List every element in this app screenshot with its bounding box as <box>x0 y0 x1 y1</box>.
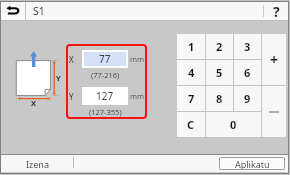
staticText: 6 <box>244 65 251 80</box>
staticText: Izena <box>26 158 49 170</box>
staticText: 0 <box>230 117 237 132</box>
button[interactable]: 5 <box>206 60 233 85</box>
button[interactable]: 9 <box>234 86 261 111</box>
button[interactable]: Aplikatu <box>220 158 284 169</box>
staticText: mm <box>130 91 145 101</box>
button[interactable]: 7 <box>177 86 205 111</box>
button[interactable]: 3 <box>234 34 261 59</box>
staticText: 7 <box>188 91 195 106</box>
button[interactable]: Back <box>1 2 25 20</box>
staticText: X <box>69 54 74 65</box>
staticText: (77-216) <box>91 70 120 80</box>
staticText: mm <box>130 54 145 64</box>
button[interactable]: 127 <box>84 89 126 103</box>
button[interactable]: 8 <box>206 86 233 111</box>
staticText: ? <box>273 2 280 20</box>
button[interactable]: 4 <box>177 60 205 85</box>
button[interactable]: 77 <box>84 52 126 66</box>
staticText: 4 <box>188 65 195 80</box>
button[interactable]: Help <box>264 2 288 20</box>
button[interactable]: Increase <box>262 34 286 85</box>
staticText: 8 <box>216 91 223 106</box>
button[interactable]: 2 <box>206 34 233 59</box>
staticText: 2 <box>216 39 223 54</box>
button[interactable]: 6 <box>234 60 261 85</box>
staticText: Y <box>56 73 61 83</box>
staticText: (127-355) <box>89 107 122 117</box>
button[interactable]: C <box>177 112 205 137</box>
staticText: 3 <box>244 39 251 54</box>
staticText: C <box>187 117 195 132</box>
button[interactable]: Decrease <box>262 86 286 137</box>
staticText: + <box>270 50 279 69</box>
staticText: 1 <box>188 39 195 54</box>
staticText: 77 <box>99 52 111 66</box>
button[interactable]: 1 <box>177 34 205 59</box>
staticText: 9 <box>244 91 251 106</box>
staticText: Y <box>69 91 74 102</box>
staticText: X <box>31 98 37 108</box>
button[interactable]: Izena <box>2 155 73 172</box>
staticText: Aplikatu <box>235 158 270 169</box>
staticText: 127 <box>96 89 114 103</box>
staticText: 5 <box>216 65 223 80</box>
button[interactable]: 0 <box>206 112 261 137</box>
staticText: S1 <box>33 4 45 18</box>
